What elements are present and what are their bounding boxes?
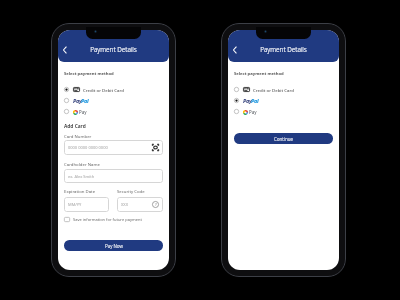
other: Scan card — [152, 144, 159, 151]
button[interactable]: Pay — [64, 106, 163, 117]
staticText: Expiration Date — [64, 188, 96, 194]
button[interactable]: 0000 0000 0000 0000 — [64, 140, 163, 155]
button[interactable]: Pay — [64, 95, 163, 106]
staticText: Save information for future payment — [73, 217, 142, 222]
button[interactable]: MM/YY — [64, 197, 109, 212]
staticText: XXX — [121, 202, 129, 207]
staticText: ex. Alex Smith — [68, 174, 95, 179]
button[interactable]: Pay — [234, 106, 333, 117]
staticText: Card Number — [64, 133, 92, 139]
other: Security code help — [152, 201, 159, 208]
staticText: Pay — [249, 109, 257, 115]
staticText: Cardholder Name — [64, 161, 100, 167]
button[interactable]: Pay Now — [64, 240, 163, 251]
staticText: Pal — [81, 97, 89, 104]
staticText: Pay — [73, 97, 82, 104]
staticText: Security Code — [117, 188, 145, 194]
button[interactable]: Back — [229, 44, 240, 55]
staticText: Pay Now — [105, 243, 123, 249]
staticText: Credit or Debit Card — [253, 87, 294, 93]
button[interactable]: Credit or Debit Card — [64, 84, 163, 95]
staticText: Payment Details — [90, 45, 137, 54]
staticText: Pay — [79, 109, 87, 115]
staticText: Payment Details — [260, 45, 307, 54]
button[interactable]: Back — [59, 44, 70, 55]
staticText: Select payment method — [234, 71, 284, 77]
staticText: ? — [155, 202, 157, 208]
button[interactable]: XXX — [117, 197, 163, 212]
button[interactable]: Credit or Debit Card — [234, 84, 333, 95]
button[interactable]: Save information for future payment — [64, 216, 163, 223]
staticText: 0000 0000 0000 0000 — [68, 145, 108, 150]
button[interactable]: ex. Alex Smith — [64, 169, 163, 183]
staticText: MM/YY — [68, 202, 82, 207]
staticText: Credit or Debit Card — [83, 87, 124, 93]
staticText: Add Card — [64, 123, 86, 130]
staticText: Pay — [243, 97, 252, 104]
button[interactable]: Pay — [234, 95, 333, 106]
staticText: Select payment method — [64, 71, 114, 77]
staticText: Pal — [251, 97, 259, 104]
staticText: Continue — [274, 136, 293, 142]
button[interactable]: Continue — [234, 133, 333, 144]
